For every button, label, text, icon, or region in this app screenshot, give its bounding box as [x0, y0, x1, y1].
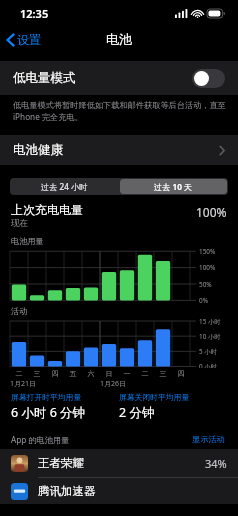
- staticText: 电池健康: [13, 142, 63, 158]
- button[interactable]: 王者荣耀: [0, 449, 238, 477]
- staticText: 12:35: [20, 6, 49, 21]
- button[interactable]: 返回设置: [0, 28, 49, 51]
- staticText: 屏幕打开时平均用量: [11, 392, 82, 402]
- button[interactable]: 低电量模式: [0, 61, 238, 95]
- staticText: 低电量模式: [13, 70, 76, 86]
- staticText: 34%: [205, 456, 227, 471]
- button[interactable]: 显示活动: [190, 432, 227, 446]
- staticText: 100%: [196, 204, 227, 220]
- button[interactable]: 电池健康: [0, 135, 238, 165]
- staticText: 低电量模式将暂时降低如下载和邮件获取等后台活动，直至 iPhone 完全充电。: [13, 100, 226, 122]
- button[interactable]: 过去 24 小时: [10, 178, 119, 195]
- button[interactable]: 低电量模式开关: [192, 69, 225, 88]
- staticText: 活动: [11, 306, 28, 316]
- staticText: App 的电池用量: [11, 434, 70, 445]
- staticText: 2 分钟: [119, 404, 155, 421]
- staticText: 腾讯加速器: [38, 484, 96, 498]
- staticText: 设置: [17, 32, 41, 47]
- staticText: 屏幕关闭时平均用量: [119, 392, 190, 402]
- button[interactable]: 腾讯加速器: [0, 478, 238, 504]
- staticText: 电池用量: [11, 236, 44, 246]
- button[interactable]: 过去 10 天: [120, 179, 227, 194]
- staticText: 现在: [11, 218, 28, 229]
- staticText: 6 小时 6 分钟: [11, 404, 86, 421]
- staticText: 上次充电电量: [11, 202, 83, 217]
- staticText: 王者荣耀: [38, 456, 84, 470]
- staticText: 过去 24 小时: [41, 181, 88, 192]
- staticText: 显示活动: [192, 434, 225, 444]
- other: 返回设置: [6, 33, 15, 47]
- staticText: 电池: [106, 31, 132, 47]
- staticText: 过去 10 天: [154, 181, 193, 192]
